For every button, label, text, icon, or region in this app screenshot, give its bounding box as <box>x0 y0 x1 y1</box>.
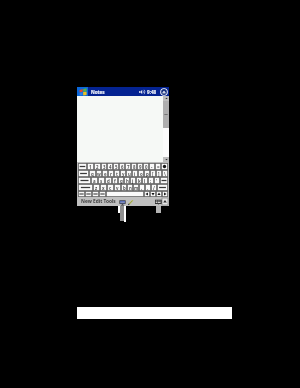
button[interactable]: t <box>114 170 120 177</box>
staticText: i <box>134 171 136 177</box>
button[interactable]: - <box>149 163 155 170</box>
button[interactable]: 3 <box>101 163 107 170</box>
button[interactable] <box>144 191 150 197</box>
button[interactable]: k <box>136 177 142 184</box>
button[interactable]: c <box>107 184 114 191</box>
staticText: m <box>134 185 139 191</box>
staticText: o <box>140 171 143 177</box>
staticText: g <box>120 178 123 184</box>
button[interactable] <box>106 191 144 197</box>
staticText: d <box>107 178 110 184</box>
button[interactable]: 6 <box>119 163 125 170</box>
button[interactable]: r <box>108 170 114 177</box>
button[interactable]: 4 <box>107 163 113 170</box>
button[interactable] <box>156 191 162 197</box>
button[interactable]: y <box>120 170 126 177</box>
button[interactable] <box>85 191 92 197</box>
button[interactable]: ; <box>148 177 154 184</box>
button[interactable]: Keyboard <box>154 197 162 206</box>
button[interactable]: 0 <box>143 163 149 170</box>
staticText: v <box>116 185 119 191</box>
button[interactable] <box>162 191 168 197</box>
staticText: a <box>93 178 96 184</box>
button[interactable]: 1 <box>87 163 94 170</box>
staticText: 5 <box>115 164 118 170</box>
button[interactable] <box>78 163 87 170</box>
button[interactable]: z <box>93 184 100 191</box>
button[interactable]: Scroll thumb <box>163 101 169 128</box>
staticText: \ <box>164 171 166 177</box>
staticText: b <box>123 185 126 191</box>
button[interactable] <box>157 184 168 191</box>
button[interactable] <box>78 170 89 177</box>
button[interactable]: s <box>98 177 105 184</box>
button[interactable]: 8 <box>131 163 137 170</box>
button[interactable]: 7 <box>125 163 131 170</box>
button[interactable]: Insert drawing <box>118 198 126 206</box>
staticText: q <box>91 171 94 177</box>
button[interactable]: Scroll up <box>163 96 169 101</box>
button[interactable]: Scroll down <box>163 157 169 162</box>
staticText: n <box>129 185 132 191</box>
button[interactable]: 9 <box>137 163 143 170</box>
button[interactable] <box>78 191 85 197</box>
staticText: ] <box>158 171 160 177</box>
button[interactable]: a <box>91 177 98 184</box>
button[interactable]: o <box>138 170 144 177</box>
button[interactable]: n <box>127 184 133 191</box>
button[interactable] <box>150 191 156 197</box>
staticText: 4 <box>109 164 112 170</box>
button[interactable]: ] <box>156 170 162 177</box>
button[interactable]: e <box>102 170 108 177</box>
staticText: . <box>147 185 149 191</box>
button[interactable]: / <box>151 184 157 191</box>
button[interactable]: Close <box>160 88 168 96</box>
staticText: / <box>153 185 155 191</box>
button[interactable] <box>160 177 168 184</box>
staticText: w <box>97 171 101 177</box>
staticText: [ <box>152 171 154 177</box>
button[interactable]: u <box>126 170 132 177</box>
button[interactable]: 5 <box>113 163 119 170</box>
button[interactable] <box>161 163 168 170</box>
button[interactable]: w <box>96 170 102 177</box>
button[interactable] <box>99 191 106 197</box>
button[interactable]: b <box>121 184 127 191</box>
button[interactable]: v <box>114 184 121 191</box>
button[interactable]: . <box>145 184 151 191</box>
button[interactable] <box>78 184 93 191</box>
button[interactable]: , <box>139 184 145 191</box>
button[interactable]: = <box>155 163 161 170</box>
button[interactable]: New Edit Tools <box>81 198 116 205</box>
button[interactable]: p <box>144 170 150 177</box>
button[interactable]: g <box>118 177 124 184</box>
button[interactable]: 2 <box>94 163 101 170</box>
staticText: 6 <box>121 164 124 170</box>
button[interactable]: Pen <box>126 198 134 206</box>
staticText: 2 <box>96 164 99 170</box>
button[interactable]: l <box>142 177 148 184</box>
button[interactable]: q <box>89 170 96 177</box>
staticText: Notes <box>91 89 105 95</box>
button[interactable]: ' <box>154 177 160 184</box>
button[interactable]: i <box>132 170 138 177</box>
button[interactable]: j <box>130 177 136 184</box>
staticText: 7 <box>127 164 130 170</box>
button[interactable]: [ <box>150 170 156 177</box>
button[interactable]: f <box>112 177 118 184</box>
button[interactable] <box>78 177 91 184</box>
button[interactable]: Start <box>77 87 88 96</box>
staticText: = <box>157 164 160 170</box>
button[interactable]: h <box>124 177 130 184</box>
button[interactable]: x <box>100 184 107 191</box>
staticText: y <box>122 171 125 177</box>
button[interactable]: \ <box>162 170 168 177</box>
staticText: 1 <box>89 164 92 170</box>
staticText: u <box>128 171 131 177</box>
staticText: New Edit Tools <box>81 198 116 205</box>
button[interactable]: Input method options <box>162 198 168 205</box>
button[interactable]: d <box>105 177 112 184</box>
button[interactable]: m <box>133 184 139 191</box>
staticText: 9:48 <box>147 89 157 95</box>
button[interactable] <box>92 191 99 197</box>
